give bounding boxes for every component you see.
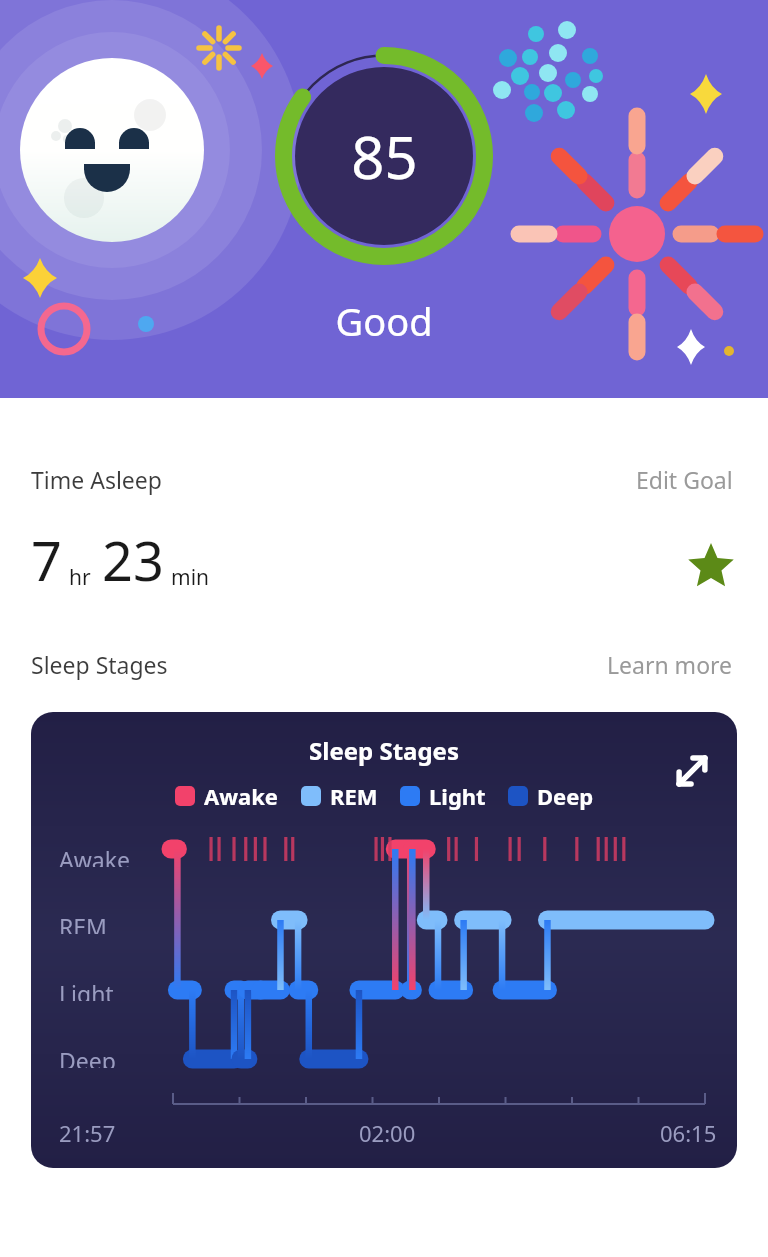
button[interactable]: Expand chart (669, 748, 715, 794)
staticText: 02:00 (359, 1118, 416, 1148)
staticText: Edit Goal (636, 464, 733, 495)
staticText: Deep (59, 1045, 116, 1068)
staticText: 23 (102, 523, 164, 597)
staticText: REM (330, 781, 378, 811)
button[interactable]: Edit Goal (632, 460, 737, 499)
staticText: 21:57 (59, 1118, 116, 1148)
staticText: hr (69, 563, 91, 592)
staticText: Awake (204, 781, 279, 811)
staticText: 06:15 (660, 1118, 717, 1148)
staticText: Time Asleep (31, 464, 162, 495)
staticText: Sleep Stages (31, 734, 737, 767)
button[interactable]: Sleep Stages (31, 712, 737, 1168)
button[interactable]: Learn more (603, 645, 737, 684)
staticText: Awake (59, 844, 130, 867)
staticText: Light (429, 781, 486, 811)
staticText: min (171, 563, 210, 592)
staticText: Good (273, 295, 495, 347)
staticText: Deep (537, 781, 594, 811)
staticText: 7 (31, 523, 62, 597)
staticText: Learn more (607, 649, 733, 680)
staticText: REM (59, 911, 107, 934)
staticText: 85 (351, 117, 418, 196)
staticText: Light (59, 978, 114, 1001)
staticText: Sleep Stages (31, 649, 168, 680)
